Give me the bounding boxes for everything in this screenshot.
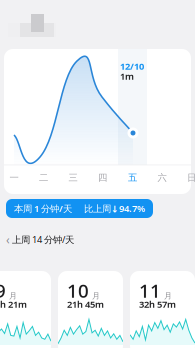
staticText: 10 xyxy=(67,278,89,303)
button[interactable]: 9 xyxy=(0,271,51,348)
staticText: 21h 45m xyxy=(67,298,104,310)
staticText: 一 xyxy=(9,172,18,183)
staticText: 上周 14 分钟/天 xyxy=(12,233,74,246)
staticText: 日 xyxy=(187,172,195,183)
staticText: 二 xyxy=(39,172,48,183)
staticText: 比上周↓94.7% xyxy=(84,202,145,215)
staticText: ‹ xyxy=(6,231,10,247)
staticText: 1m xyxy=(120,70,134,82)
staticText: 三 xyxy=(68,172,77,183)
button[interactable]: ‹ xyxy=(6,233,74,246)
staticText: 六 xyxy=(157,172,166,183)
button[interactable]: 11 xyxy=(130,271,195,348)
staticText: 8h 21m xyxy=(0,298,27,310)
staticText: 月 xyxy=(92,291,100,301)
staticText: 32h 57m xyxy=(139,298,176,310)
staticText: 五 xyxy=(128,172,137,183)
staticText: 9 xyxy=(0,278,6,303)
staticText: 本周 1 分钟/天 xyxy=(14,202,72,215)
staticText: 四 xyxy=(98,172,107,183)
staticText: 12/10 xyxy=(120,60,144,72)
staticText: 月 xyxy=(9,291,17,301)
staticText: 月 xyxy=(164,291,172,301)
button[interactable]: 10 xyxy=(58,271,123,348)
button[interactable]: 本周 1 分钟/天 xyxy=(6,199,153,218)
staticText: 11 xyxy=(139,278,161,303)
